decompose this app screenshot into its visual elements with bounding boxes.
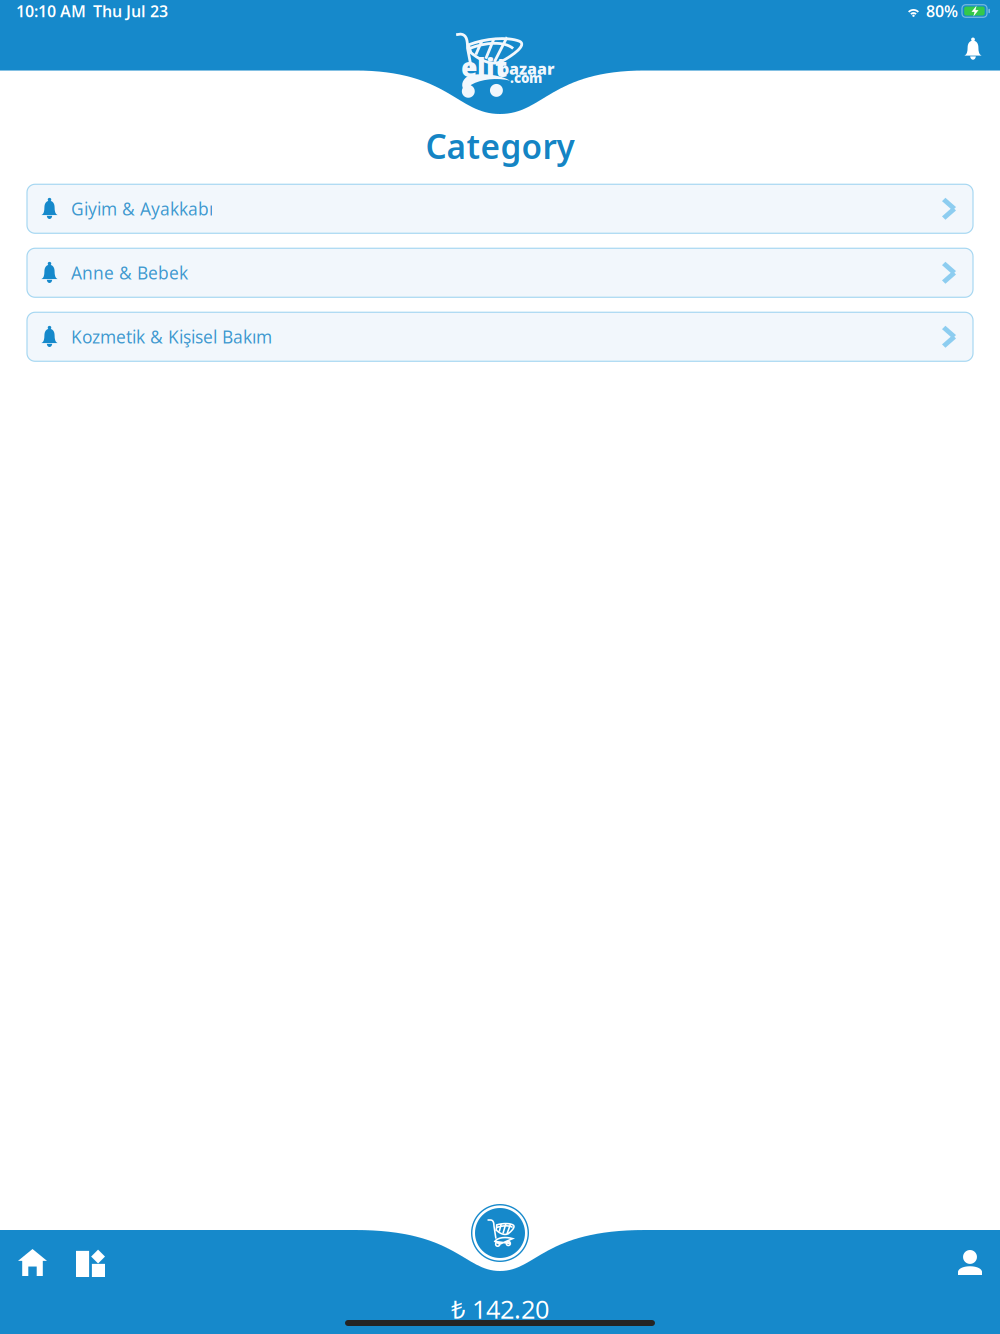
button[interactable]: Anne & Bebek <box>27 248 973 297</box>
button[interactable]: Kozmetik & Kişisel Bakım <box>27 312 973 361</box>
button[interactable]: Categories <box>58 1237 116 1288</box>
button[interactable]: Cart <box>471 1204 529 1262</box>
staticText: Thu Jul 23 <box>93 0 168 22</box>
staticText: ₺ 142.20 <box>451 1292 549 1326</box>
button[interactable]: Home <box>0 1237 58 1288</box>
staticText: .com <box>510 69 542 87</box>
staticText: 10:10 AM <box>16 0 86 22</box>
button[interactable]: Notifications <box>952 26 994 72</box>
staticText: Kozmetik & Kişisel Bakım <box>71 325 272 348</box>
staticText: bazaar <box>499 58 555 79</box>
staticText: Category <box>425 124 574 168</box>
staticText: Giyim & Ayakkabı <box>71 197 213 220</box>
button[interactable]: Giyim & Ayakkabı <box>27 184 973 233</box>
staticText: Anne & Bebek <box>71 261 188 284</box>
staticText: 80% <box>926 0 958 22</box>
staticText: elit <box>461 49 507 84</box>
button[interactable]: Profile <box>947 1238 1000 1287</box>
